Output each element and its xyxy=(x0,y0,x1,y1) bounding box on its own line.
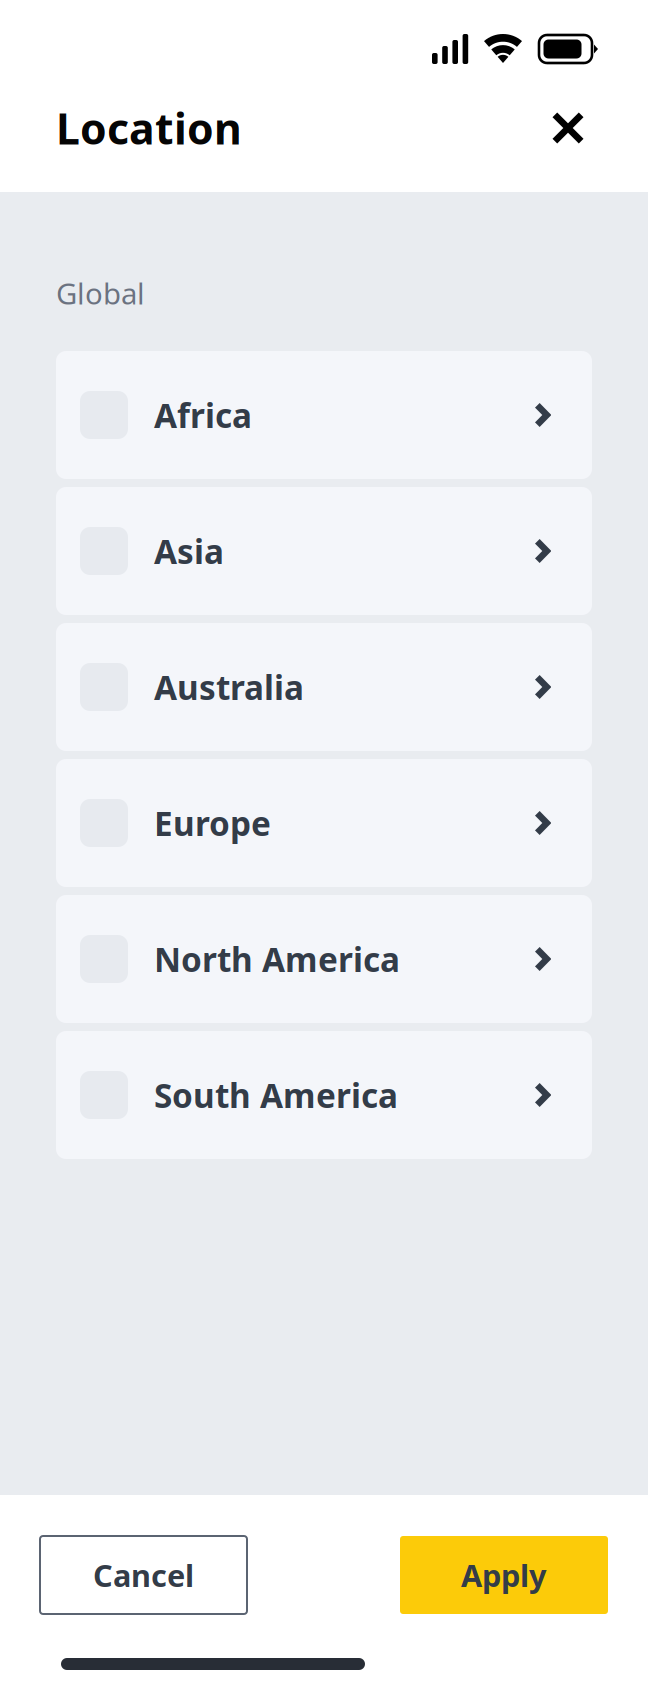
button[interactable]: Cancel xyxy=(40,1536,247,1614)
staticText: Apply xyxy=(461,1555,547,1595)
staticText: Africa xyxy=(154,393,252,437)
staticText: Australia xyxy=(154,665,304,709)
staticText: Global xyxy=(56,273,145,312)
staticText: Cancel xyxy=(93,1555,194,1595)
button[interactable]: Europe xyxy=(56,759,592,887)
staticText: Asia xyxy=(154,529,224,573)
button[interactable]: North America xyxy=(56,895,592,1023)
staticText: Location xyxy=(56,100,242,156)
button[interactable]: Africa xyxy=(56,351,592,479)
staticText: South America xyxy=(154,1073,398,1117)
button[interactable]: Close xyxy=(538,98,598,158)
button[interactable]: South America xyxy=(56,1031,592,1159)
button[interactable]: Apply xyxy=(400,1536,608,1614)
button[interactable]: Asia xyxy=(56,487,592,615)
staticText: Europe xyxy=(154,801,271,845)
staticText: North America xyxy=(154,937,400,981)
button[interactable]: Australia xyxy=(56,623,592,751)
